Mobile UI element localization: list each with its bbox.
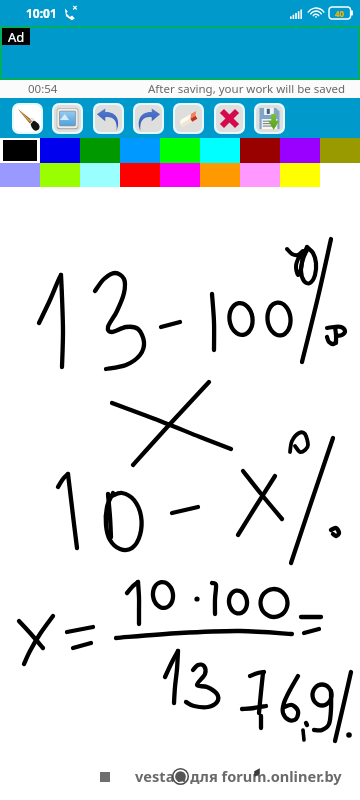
staticText: vesta n для forum.onliner.by xyxy=(135,767,342,787)
button[interactable]: Redo xyxy=(135,105,162,132)
button[interactable]: Clear xyxy=(216,105,243,132)
staticText: vesta n для forum.onliner.by xyxy=(136,766,343,786)
staticText: Ad xyxy=(8,28,25,45)
staticText: After saving, your work will be saved xyxy=(148,81,346,97)
staticText: 10:01 xyxy=(26,5,57,21)
staticText: vesta n для forum.onliner.by xyxy=(136,767,343,787)
staticText: vesta n для forum.onliner.by xyxy=(134,766,341,786)
button[interactable]: Insert image xyxy=(54,105,81,132)
staticText: vesta n для forum.onliner.by xyxy=(134,767,341,787)
button[interactable]: Eraser xyxy=(175,105,202,132)
button[interactable]: Ad xyxy=(2,28,358,78)
staticText: vesta n для forum.onliner.by xyxy=(134,765,341,785)
staticText: vesta n для forum.onliner.by xyxy=(136,765,343,785)
staticText: 00:54 xyxy=(28,81,58,97)
button[interactable] xyxy=(0,138,40,163)
button[interactable]: Undo xyxy=(95,105,122,132)
staticText: vesta n для forum.onliner.by xyxy=(135,765,342,785)
button[interactable] xyxy=(0,187,360,800)
button[interactable]: Save xyxy=(256,105,283,132)
button[interactable]: Brush xyxy=(14,105,41,132)
staticText: vesta n для forum.onliner.by xyxy=(135,766,342,786)
staticText: 40 xyxy=(335,8,345,19)
